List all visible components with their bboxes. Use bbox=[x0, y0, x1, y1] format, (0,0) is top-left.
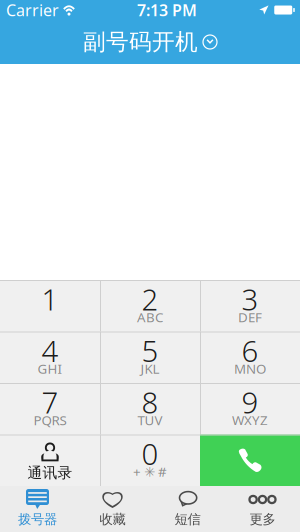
staticText: WXYZ bbox=[232, 411, 268, 429]
button[interactable]: 副号码开机 bbox=[0, 20, 300, 64]
staticText: 收藏 bbox=[99, 511, 125, 527]
button[interactable]: 3 bbox=[200, 280, 300, 331]
staticText: 2 bbox=[141, 279, 158, 318]
staticText: 8 bbox=[141, 382, 158, 421]
staticText: 7:13 PM bbox=[137, 0, 197, 21]
staticText: GHI bbox=[37, 360, 62, 377]
staticText: 拨号器 bbox=[18, 511, 57, 527]
staticText: TUV bbox=[137, 411, 162, 429]
staticText: 0 bbox=[141, 434, 158, 473]
staticText: 9 bbox=[241, 382, 258, 421]
button[interactable]: 2 bbox=[100, 280, 200, 331]
staticText: ABC bbox=[137, 308, 163, 326]
button[interactable]: 短信 bbox=[150, 486, 225, 532]
button[interactable]: Call bbox=[200, 434, 300, 486]
staticText: 4 bbox=[41, 331, 58, 370]
button[interactable]: 0 bbox=[100, 434, 200, 486]
button[interactable]: 拨号器 bbox=[0, 486, 75, 532]
staticText: 1 bbox=[41, 279, 58, 318]
staticText: 更多 bbox=[249, 511, 275, 527]
button[interactable]: 5 bbox=[100, 331, 200, 383]
staticText: 短信 bbox=[174, 511, 200, 527]
button[interactable]: 更多 bbox=[225, 486, 300, 532]
button[interactable]: 通讯录 bbox=[0, 434, 100, 486]
staticText: MNO bbox=[234, 360, 266, 377]
button[interactable]: 8 bbox=[100, 383, 200, 434]
button[interactable]: 7 bbox=[0, 383, 100, 434]
staticText: 7 bbox=[41, 382, 58, 421]
staticText: 3 bbox=[241, 279, 258, 318]
staticText: 6 bbox=[241, 331, 258, 370]
button[interactable]: 9 bbox=[200, 383, 300, 434]
staticText: PQRS bbox=[33, 411, 66, 429]
button[interactable]: 4 bbox=[0, 331, 100, 383]
staticText: JKL bbox=[140, 360, 159, 377]
staticText: Carrier bbox=[6, 0, 59, 21]
staticText: + ✳ # bbox=[133, 463, 167, 480]
staticText: DEF bbox=[238, 308, 262, 326]
button[interactable]: 6 bbox=[200, 331, 300, 383]
staticText: 通讯录 bbox=[27, 464, 72, 482]
button[interactable]: 1 bbox=[0, 280, 100, 331]
button[interactable]: 收藏 bbox=[75, 486, 150, 532]
staticText: 副号码开机 bbox=[83, 28, 198, 56]
staticText: 5 bbox=[141, 331, 158, 370]
